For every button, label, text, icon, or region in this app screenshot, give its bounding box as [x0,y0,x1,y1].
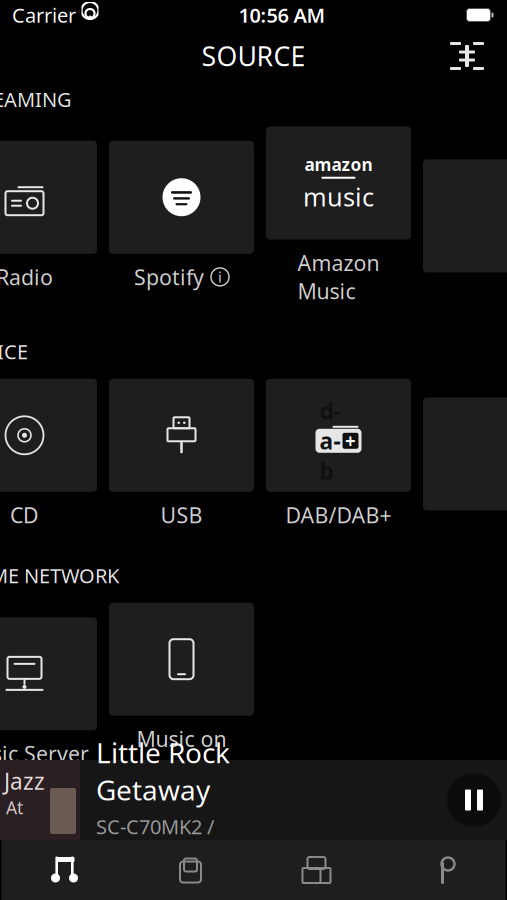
button[interactable]: USB [109,379,254,529]
button[interactable]: Settings [379,840,505,900]
button[interactable]: Pause [441,760,507,840]
staticText: USB [160,501,202,529]
staticText: this device [128,754,235,782]
button[interactable]: Music [1,840,127,900]
staticText: i [218,267,222,287]
staticText: Music Server [0,739,89,768]
staticText: SOURCE [201,38,305,74]
button[interactable]: Audio settings [439,33,495,79]
staticText: STREAMING [0,86,72,113]
button[interactable]: amazon [266,127,411,305]
button[interactable]: Music on [109,603,254,782]
staticText: DEVICE [0,338,28,365]
staticText: + [345,428,356,453]
staticText: dab [319,396,340,486]
staticText: DAB/DAB+ [285,501,391,529]
staticText: Spotify [134,263,204,291]
staticText: HOME NETWORK [0,562,119,589]
button[interactable]: Favorites [127,840,253,900]
staticText: Amazon Music [297,249,379,305]
staticText: Little Rock Getaway [96,734,230,808]
staticText: 10:56 AM [238,2,325,28]
staticText: Radio [0,263,53,291]
staticText: Jazz [4,766,45,796]
button[interactable]: Spotify [109,141,254,291]
staticText: music [303,180,374,213]
button[interactable]: Rooms [253,840,379,900]
staticText: At [6,796,23,819]
staticText: Carrier [12,2,76,28]
button[interactable]: Music Server [0,617,97,768]
button[interactable]: Radio [0,141,97,291]
staticText: Music on [136,725,226,753]
staticText: CD [10,501,39,529]
button[interactable]: CD [0,379,97,529]
staticText: amazon [304,153,372,176]
button[interactable]: dab [266,379,411,529]
staticText: SC-C70MK2 / DMR [96,813,214,866]
